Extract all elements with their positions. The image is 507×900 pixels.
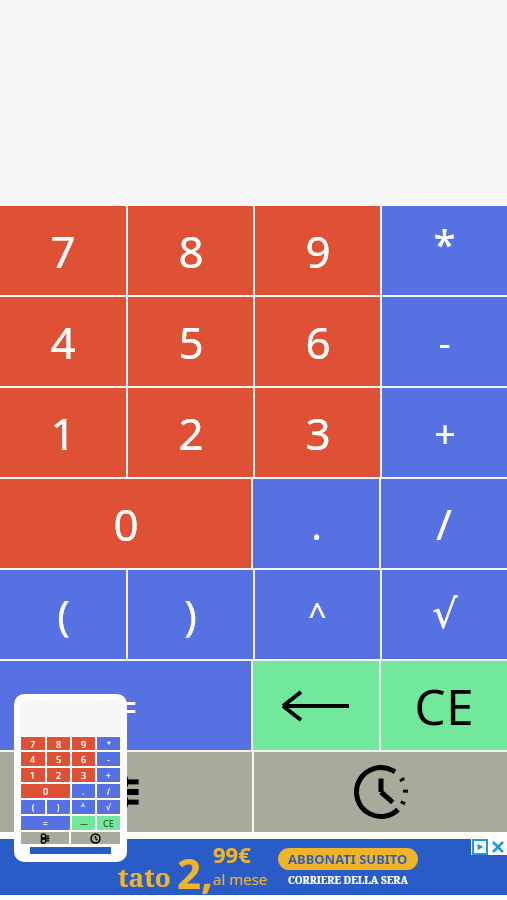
staticText: - [438,316,451,368]
staticText: ) [184,586,197,643]
staticText: 5 [56,753,62,765]
staticText: 1 [30,769,36,781]
staticText: ) [57,802,60,813]
staticText: 0 [113,494,139,554]
button[interactable]: √ [382,570,507,659]
staticText: 7 [30,738,36,750]
button[interactable]: ^ [255,570,380,659]
staticText: . [82,786,85,797]
button[interactable]: - [382,297,507,386]
staticText: 9 [305,221,331,281]
staticText: 2, [177,844,213,900]
staticText: = [43,818,48,829]
staticText: 2 [56,769,62,781]
staticText: √ [432,591,458,638]
button[interactable]: Settings [0,752,252,832]
staticText: 6 [305,312,331,372]
staticText: 99€ [213,839,251,869]
staticText: 8 [56,738,62,750]
staticText: 6 [81,753,87,765]
staticText: 3 [81,769,87,781]
button[interactable]: 7 [0,206,126,295]
staticText: — [80,818,88,829]
staticText: ( [32,802,35,813]
staticText: 9 [81,738,87,750]
staticText: 8 [178,221,204,281]
staticText: + [106,770,111,781]
staticText: ( [57,586,70,643]
button[interactable]: 0 [0,479,251,568]
button[interactable]: 4 [0,297,126,386]
staticText: * [433,216,456,270]
staticText: 4 [50,312,76,372]
staticText: / [436,495,452,552]
button[interactable]: 8 [128,206,253,295]
staticText: + [434,407,456,459]
button[interactable]: ( [0,570,126,659]
staticText: CE [103,817,114,829]
staticText: tato [118,859,171,894]
staticText: CORRIERE DELLA SERA [288,873,408,887]
button[interactable]: History [254,752,507,832]
button[interactable]: 9 [255,206,380,295]
button[interactable]: = [0,661,251,750]
staticText: ^ [308,593,327,637]
button[interactable]: 6 [255,297,380,386]
staticText: ^ [81,802,86,812]
button[interactable]: / [381,479,507,568]
staticText: CE [414,672,474,740]
button[interactable]: 1 [0,388,126,477]
staticText: 4 [30,753,36,765]
button[interactable]: 2 [128,388,253,477]
staticText: - [107,754,110,765]
button[interactable]: 5 [128,297,253,386]
button[interactable]: * [382,206,507,295]
staticText: 7 [50,221,76,281]
staticText: ABBONATI SUBITO [288,850,408,868]
staticText: 0 [43,785,49,797]
staticText: 3 [305,403,331,463]
staticText: al mese [213,869,268,889]
staticText: 2 [178,403,204,463]
button[interactable]: ) [128,570,253,659]
button[interactable]: Backspace [253,661,379,750]
button[interactable]: Preview [14,694,127,862]
staticText: 1 [50,403,76,463]
staticText: 5 [178,312,204,372]
staticText: = [113,677,138,734]
staticText: . [311,497,322,551]
staticText: √ [106,803,112,812]
staticText: / [107,786,110,797]
button[interactable]: + [382,388,507,477]
button[interactable]: Advertisement [0,839,507,895]
button[interactable]: 3 [255,388,380,477]
staticText: * [107,739,111,749]
button[interactable]: CE [381,661,507,750]
button[interactable]: . [253,479,379,568]
